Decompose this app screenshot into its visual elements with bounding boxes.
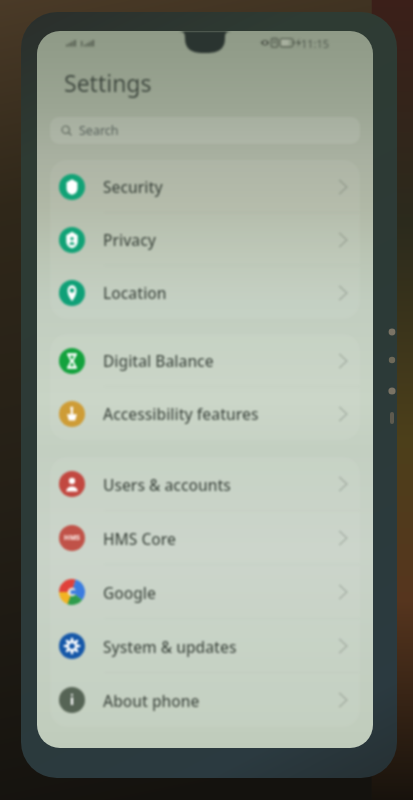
staticText: Location [103,282,167,303]
staticText: About phone [103,690,200,711]
button[interactable]: Location [50,266,360,319]
staticText: System & updates [103,636,237,657]
button[interactable]: Security [50,160,360,213]
button[interactable]: Accessibility features [50,387,360,440]
button[interactable]: Google [50,565,360,619]
button[interactable]: About phone [50,673,360,727]
button[interactable]: Search [50,117,360,144]
staticText: Digital Balance [103,350,214,371]
staticText: Users & accounts [103,474,231,495]
button[interactable]: Digital Balance [50,334,360,387]
button[interactable]: HMS [50,511,360,565]
staticText: Search [79,122,119,139]
staticText: Google [103,582,156,603]
staticText: HMS Core [103,528,176,549]
button[interactable]: Privacy [50,213,360,266]
button[interactable]: Users & accounts [50,457,360,511]
button[interactable]: System & updates [50,619,360,673]
staticText: Security [103,176,163,197]
staticText: Accessibility features [103,403,259,424]
staticText: HMS [64,533,80,543]
staticText: 11:15 [301,36,330,51]
staticText: Settings [64,67,152,98]
staticText: Privacy [103,229,157,250]
